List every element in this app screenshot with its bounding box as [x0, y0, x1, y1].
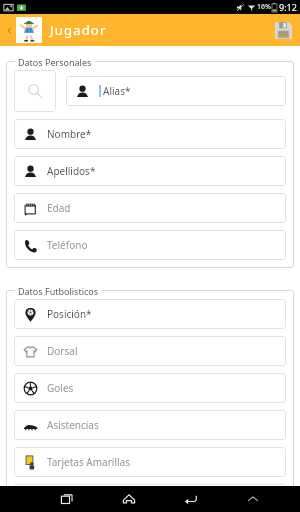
staticText: Jugador: [50, 21, 107, 39]
staticText: Tarjetas Amarillas: [47, 455, 130, 469]
staticText: 9:12: [279, 1, 297, 13]
button[interactable]: Nombre*: [14, 119, 286, 149]
staticText: Teléfono: [47, 238, 88, 252]
staticText: Datos Futbolisticos: [18, 285, 99, 297]
button[interactable]: Back: [2, 14, 16, 46]
staticText: Asistencias: [47, 418, 99, 432]
button[interactable]: Apellidos*: [14, 156, 286, 186]
staticText: Alias*: [103, 84, 131, 98]
button[interactable]: Teléfono: [14, 230, 286, 260]
button[interactable]: Goles: [14, 373, 286, 403]
button[interactable]: Tarjetas Amarillas: [14, 447, 286, 477]
button[interactable]: Back: [160, 486, 222, 512]
button[interactable]: Dorsal: [14, 336, 286, 366]
button[interactable]: Show menu: [222, 486, 284, 512]
button[interactable]: Search player: [14, 70, 56, 112]
button[interactable]: Tarjetas Rojas: [14, 484, 286, 486]
staticText: Dorsal: [47, 344, 78, 358]
button[interactable]: Edad: [14, 193, 286, 223]
staticText: Edad: [47, 201, 71, 215]
button[interactable]: App icon: [16, 17, 42, 43]
button[interactable]: Home: [98, 486, 160, 512]
staticText: 16%: [257, 2, 271, 12]
button[interactable]: Alias*: [66, 76, 286, 106]
button[interactable]: Recent apps: [35, 486, 98, 512]
staticText: Datos Personales: [18, 56, 92, 68]
button[interactable]: Asistencias: [14, 410, 286, 440]
staticText: Apellidos*: [47, 164, 96, 178]
staticText: Nombre*: [47, 127, 92, 141]
button[interactable]: Posición*: [14, 299, 286, 329]
staticText: Goles: [47, 381, 74, 395]
staticText: Posición*: [47, 307, 92, 321]
button[interactable]: Save: [266, 14, 300, 46]
